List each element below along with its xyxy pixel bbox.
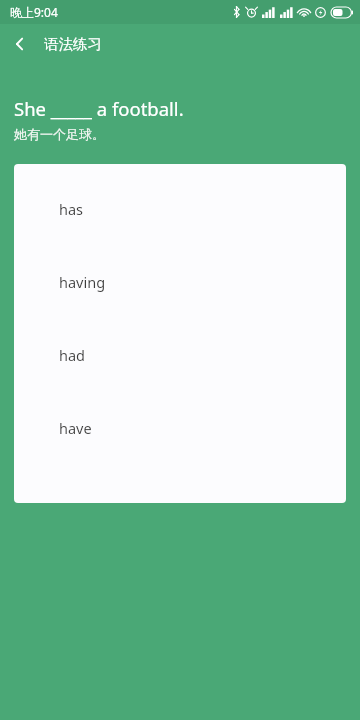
staticText: She _____ a football. [14, 96, 184, 121]
staticText: 她有一个足球。 [14, 126, 105, 142]
button[interactable]: Back [0, 24, 40, 64]
button[interactable]: has [14, 186, 346, 259]
staticText: 晚上9:04 [10, 4, 58, 20]
staticText: had [59, 345, 86, 365]
button[interactable]: have [14, 405, 346, 478]
staticText: 语法练习 [44, 35, 102, 53]
button[interactable]: having [14, 259, 346, 332]
staticText: has [59, 199, 84, 219]
staticText: having [59, 272, 106, 292]
button[interactable]: had [14, 332, 346, 405]
staticText: have [59, 418, 92, 438]
